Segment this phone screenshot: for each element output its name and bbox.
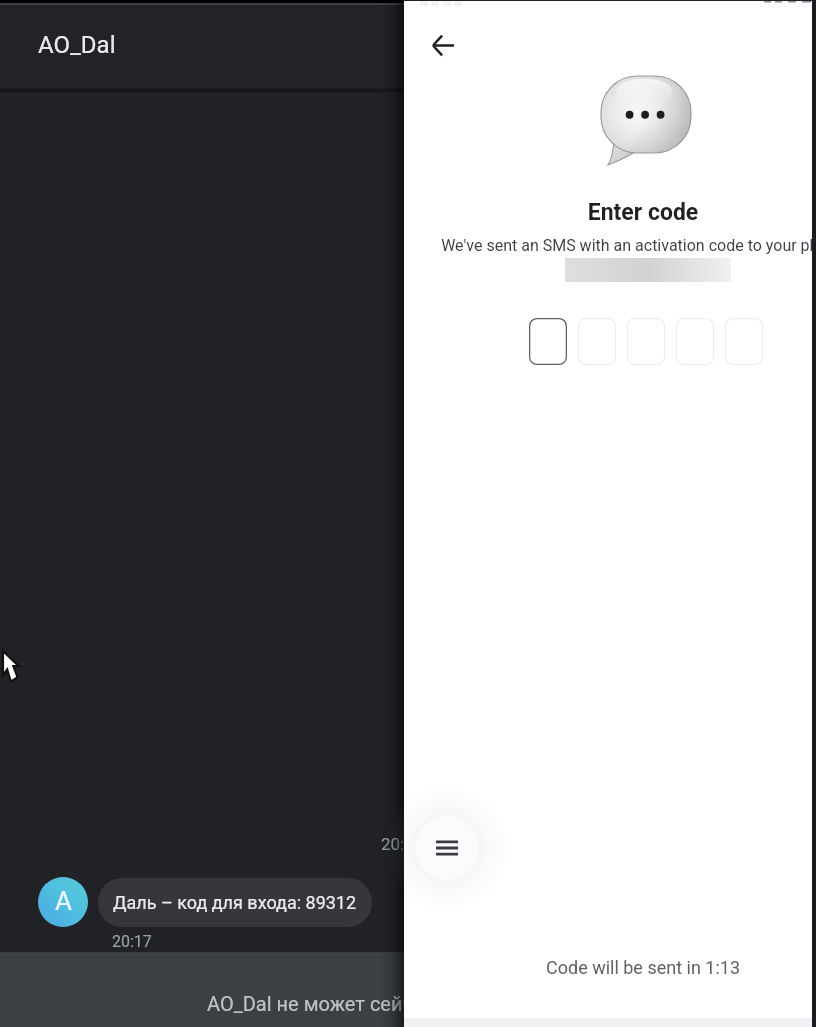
staticText: 20: xyxy=(381,834,405,854)
button[interactable] xyxy=(529,318,567,365)
staticText: A xyxy=(55,886,72,916)
button[interactable]: AO_Dal xyxy=(0,5,816,89)
button[interactable]: Back xyxy=(421,23,465,67)
staticText: We've sent an SMS with an activation cod… xyxy=(404,236,816,255)
button[interactable] xyxy=(578,318,616,365)
staticText: Даль – код для входа: 89312 xyxy=(113,892,357,913)
staticText: AO_Dal xyxy=(38,31,116,59)
button[interactable]: Даль – код для входа: 89312 xyxy=(98,878,372,927)
button[interactable] xyxy=(725,318,763,365)
staticText: 20:17 xyxy=(112,932,152,951)
button[interactable] xyxy=(627,318,665,365)
staticText: Enter code xyxy=(404,199,816,226)
button[interactable] xyxy=(676,318,714,365)
staticText: Code will be sent in 1:13 xyxy=(404,957,816,978)
button[interactable]: Menu xyxy=(415,816,479,880)
staticText: AO_Dal не может сейчас получать xyxy=(207,992,526,1015)
